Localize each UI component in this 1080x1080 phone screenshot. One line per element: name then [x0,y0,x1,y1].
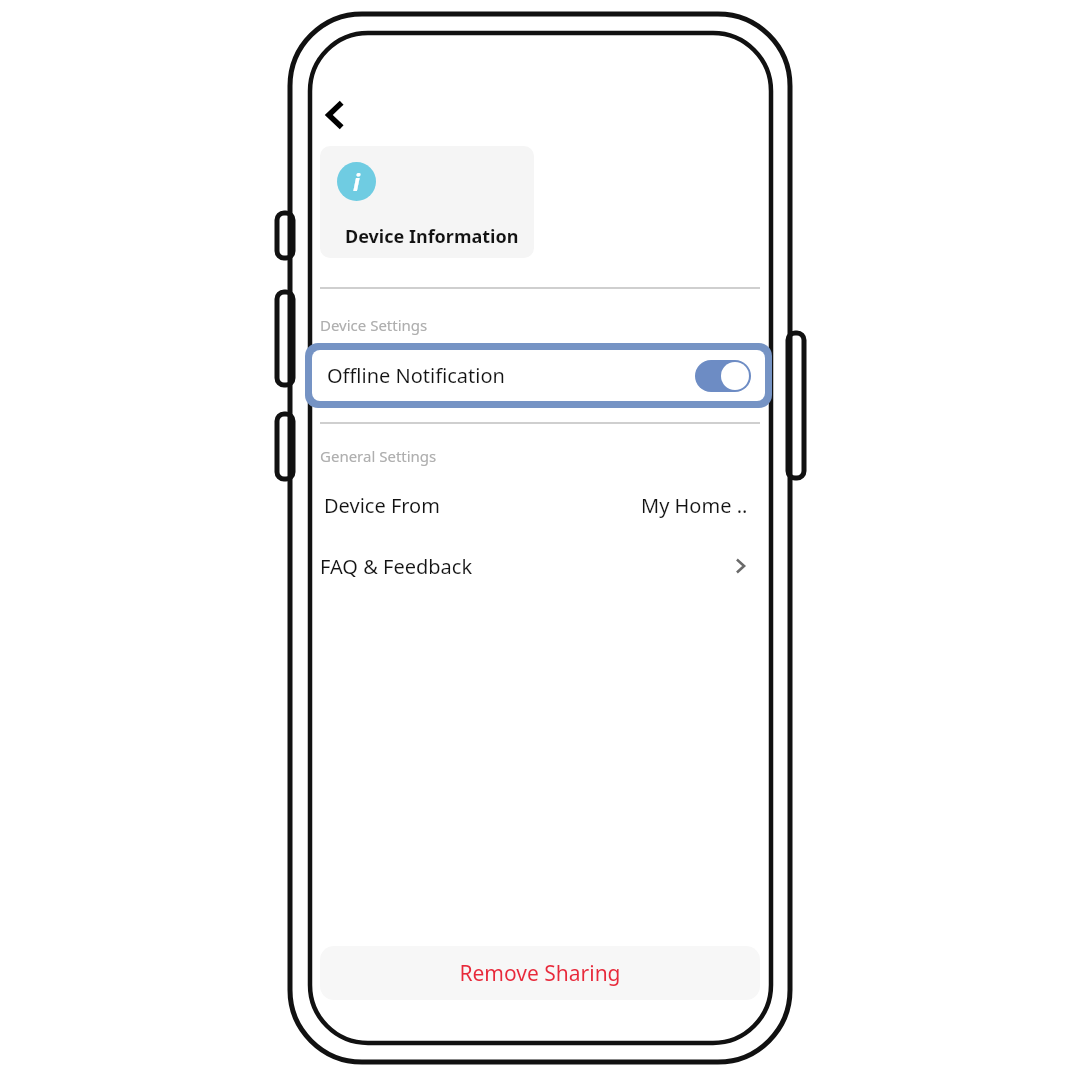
staticText: FAQ & Feedback [320,553,473,580]
staticText: Remove Sharing [459,959,621,988]
staticText: Device Settings [320,315,428,335]
button[interactable]: Remove Sharing [320,946,760,1000]
staticText: Device Information [345,224,519,249]
button[interactable]: i [320,146,534,258]
staticText: General Settings [320,446,437,466]
button[interactable]: FAQ & Feedback [320,542,760,590]
button[interactable]: Device From [320,481,760,529]
staticText: i [353,166,360,197]
staticText: Device From [324,492,440,519]
staticText: Offline Notification [327,362,505,389]
button[interactable]: Offline Notification [312,350,765,401]
button[interactable]: Back [312,92,358,138]
staticText: My Home .. [641,492,748,519]
